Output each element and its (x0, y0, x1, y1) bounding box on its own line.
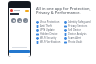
staticText: Anti Theft (40, 24, 52, 28)
button[interactable]: Identity Safeguard (64, 20, 92, 24)
staticText: Hidden Device (40, 32, 58, 36)
button[interactable]: Hidden Device (36, 32, 64, 36)
staticText: All in one app for Protection, Privacy &… (36, 6, 91, 15)
staticText: Device Analysis (68, 32, 87, 36)
staticText: Sell Device (68, 28, 81, 32)
staticText: Identity Safeguard (68, 20, 91, 24)
staticText: VPN Update (40, 28, 55, 32)
button[interactable]: Virus Protection (36, 20, 64, 24)
staticText: Photo Vault (68, 40, 83, 44)
button[interactable]: Photo Vault (64, 40, 92, 44)
staticText: Wi-Fi Security (40, 36, 57, 40)
staticText: Scam Alert (68, 36, 82, 40)
staticText: Wi-Fi Verification (40, 40, 61, 44)
button[interactable] (9, 50, 30, 53)
staticText: Virus Protection (40, 20, 60, 24)
button[interactable]: VPN Update (36, 28, 64, 32)
button[interactable]: Scan (11, 18, 16, 23)
button[interactable]: Wi-Fi Verification (36, 40, 64, 44)
button[interactable]: Privacy Services (64, 24, 92, 28)
button[interactable]: Sell Device (64, 28, 92, 32)
button[interactable]: Scam Alert (64, 36, 92, 40)
button[interactable]: Lock (17, 18, 22, 23)
button[interactable]: Anti Theft (36, 24, 64, 28)
button[interactable]: Wi-Fi Security (36, 36, 64, 40)
staticText: Privacy Services (68, 24, 88, 28)
button[interactable]: Device Analysis (64, 32, 92, 36)
button[interactable]: Boost (23, 18, 28, 23)
